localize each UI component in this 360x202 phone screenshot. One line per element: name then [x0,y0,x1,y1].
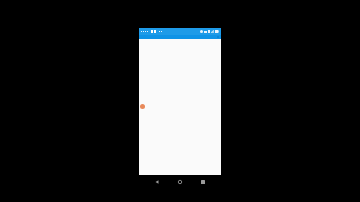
button[interactable]: Back [152,177,162,187]
button[interactable]: Home [175,177,185,187]
button[interactable]: Accent marker [140,104,145,109]
button[interactable]: Recent apps [198,177,208,187]
